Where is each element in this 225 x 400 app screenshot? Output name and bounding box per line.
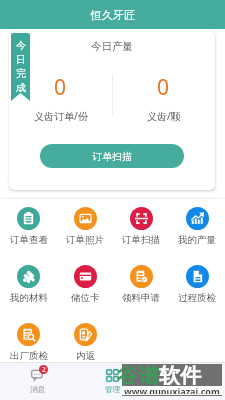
button[interactable]: 订单查看	[0, 207, 57, 246]
staticText: 过程质检	[178, 292, 216, 304]
button[interactable]: 管理	[75, 363, 150, 400]
staticText: 内返	[76, 350, 95, 362]
staticText: 今日产量	[9, 40, 215, 53]
staticText: 谷谱	[117, 363, 159, 385]
staticText: 领料申请	[122, 292, 160, 304]
staticText: 软件园	[159, 363, 217, 385]
staticText: 完	[16, 67, 26, 80]
staticText: 0	[157, 73, 170, 102]
staticText: 0	[54, 73, 67, 102]
staticText: 储位卡	[71, 292, 100, 304]
staticText: 出厂质检	[10, 350, 48, 362]
button[interactable]: 过程质检	[169, 265, 225, 304]
button[interactable]: 领料申请	[113, 265, 169, 304]
button[interactable]: 我的产量	[169, 207, 225, 246]
staticText: 我的产量	[178, 234, 216, 246]
staticText: 日	[16, 53, 26, 66]
button[interactable]: 内返	[57, 323, 113, 362]
staticText: 管理	[105, 385, 120, 394]
staticText: 我的	[180, 385, 195, 394]
button[interactable]: 消息	[0, 363, 75, 400]
staticText: 消息	[30, 385, 45, 394]
staticText: 义齿订单/份	[34, 109, 88, 123]
button[interactable]: 订单照片	[57, 207, 113, 246]
button[interactable]: 我的材料	[0, 265, 57, 304]
button[interactable]: 订单扫描	[113, 207, 169, 246]
staticText: 恒久牙匠	[91, 8, 135, 22]
staticText: 订单查看	[10, 234, 48, 246]
button[interactable]: 订单扫描	[40, 144, 184, 168]
staticText: www.gupuxiazai.com	[124, 385, 220, 394]
button[interactable]: 我的	[150, 363, 225, 400]
button[interactable]: 储位卡	[57, 265, 113, 304]
staticText: 订单扫描	[122, 234, 160, 246]
staticText: 义齿/颗	[147, 109, 181, 123]
staticText: 今	[16, 39, 26, 52]
staticText: 订单照片	[66, 234, 104, 246]
staticText: 2	[42, 365, 46, 374]
staticText: 成	[16, 81, 26, 94]
staticText: 我的材料	[10, 292, 48, 304]
button[interactable]: 出厂质检	[0, 323, 57, 362]
staticText: 订单扫描	[92, 150, 132, 163]
